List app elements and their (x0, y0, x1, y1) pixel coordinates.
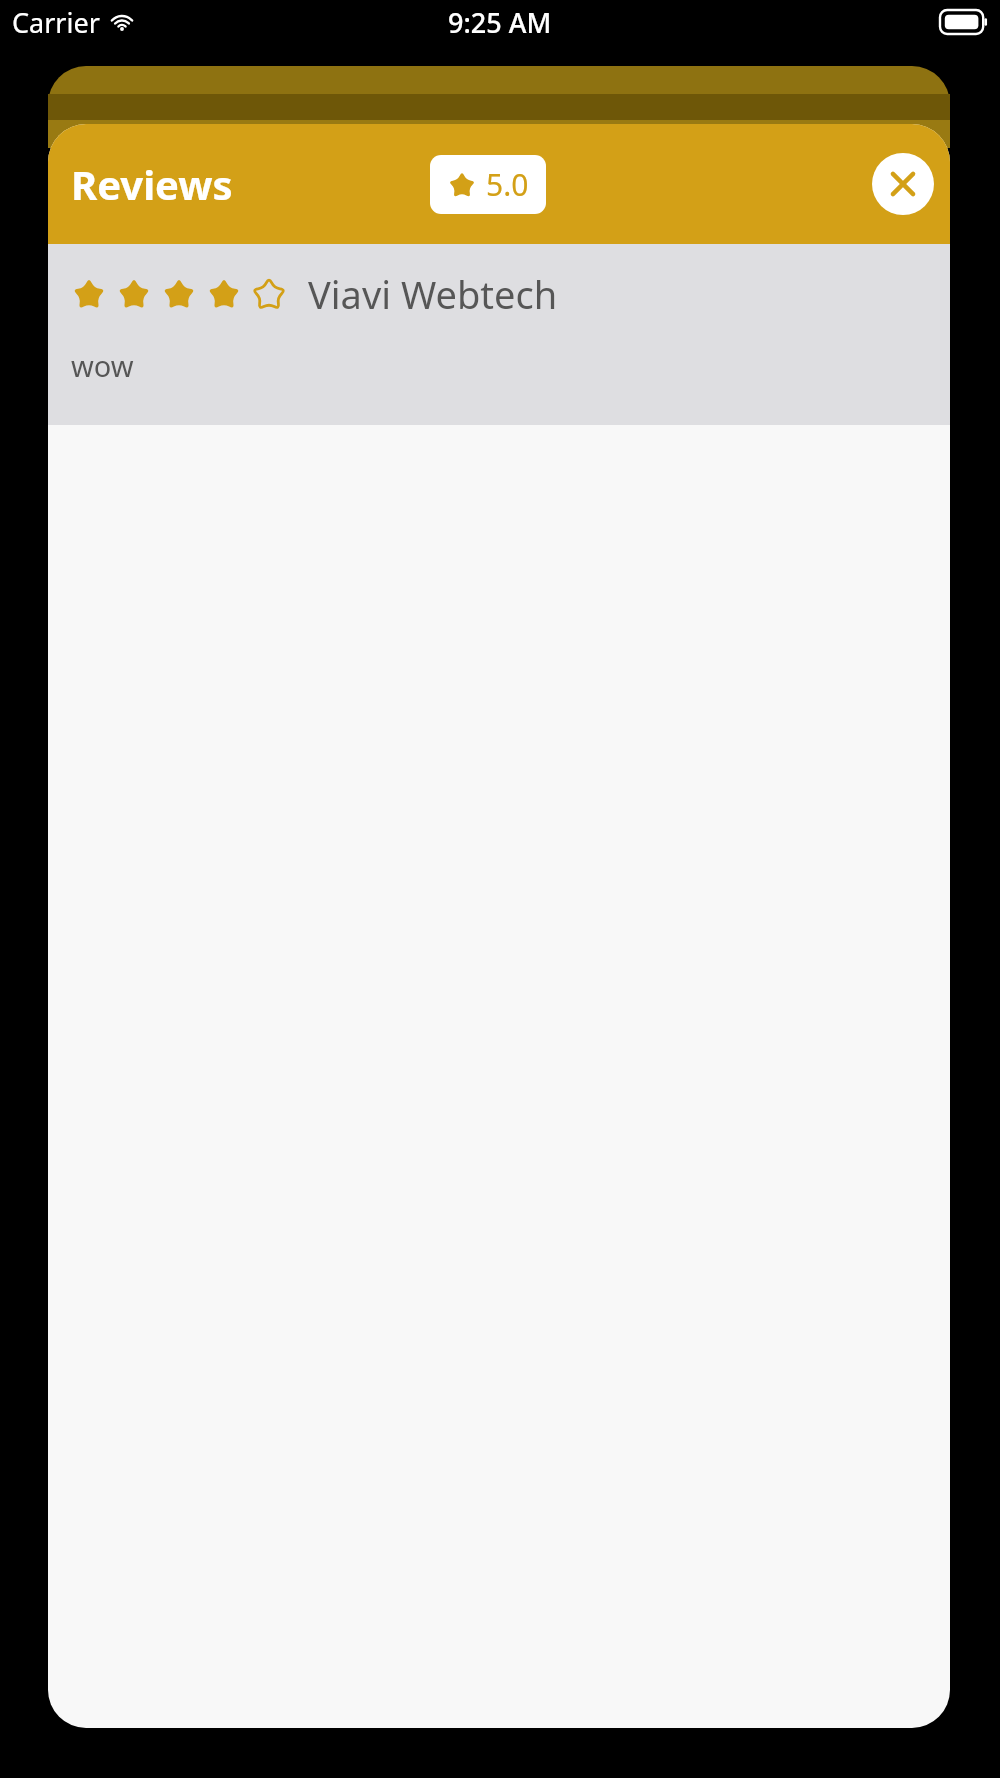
staticText: 9:25 AM (448, 4, 552, 41)
button[interactable]: Close (872, 153, 934, 215)
button[interactable]: 5.0 (430, 155, 546, 214)
staticText: Viavi Webtech (308, 268, 558, 320)
button[interactable]: Viavi Webtech (48, 244, 950, 425)
staticText: wow (71, 346, 134, 385)
staticText: Carrier (12, 4, 100, 41)
staticText: 5.0 (486, 164, 529, 205)
staticText: Reviews (71, 157, 233, 211)
